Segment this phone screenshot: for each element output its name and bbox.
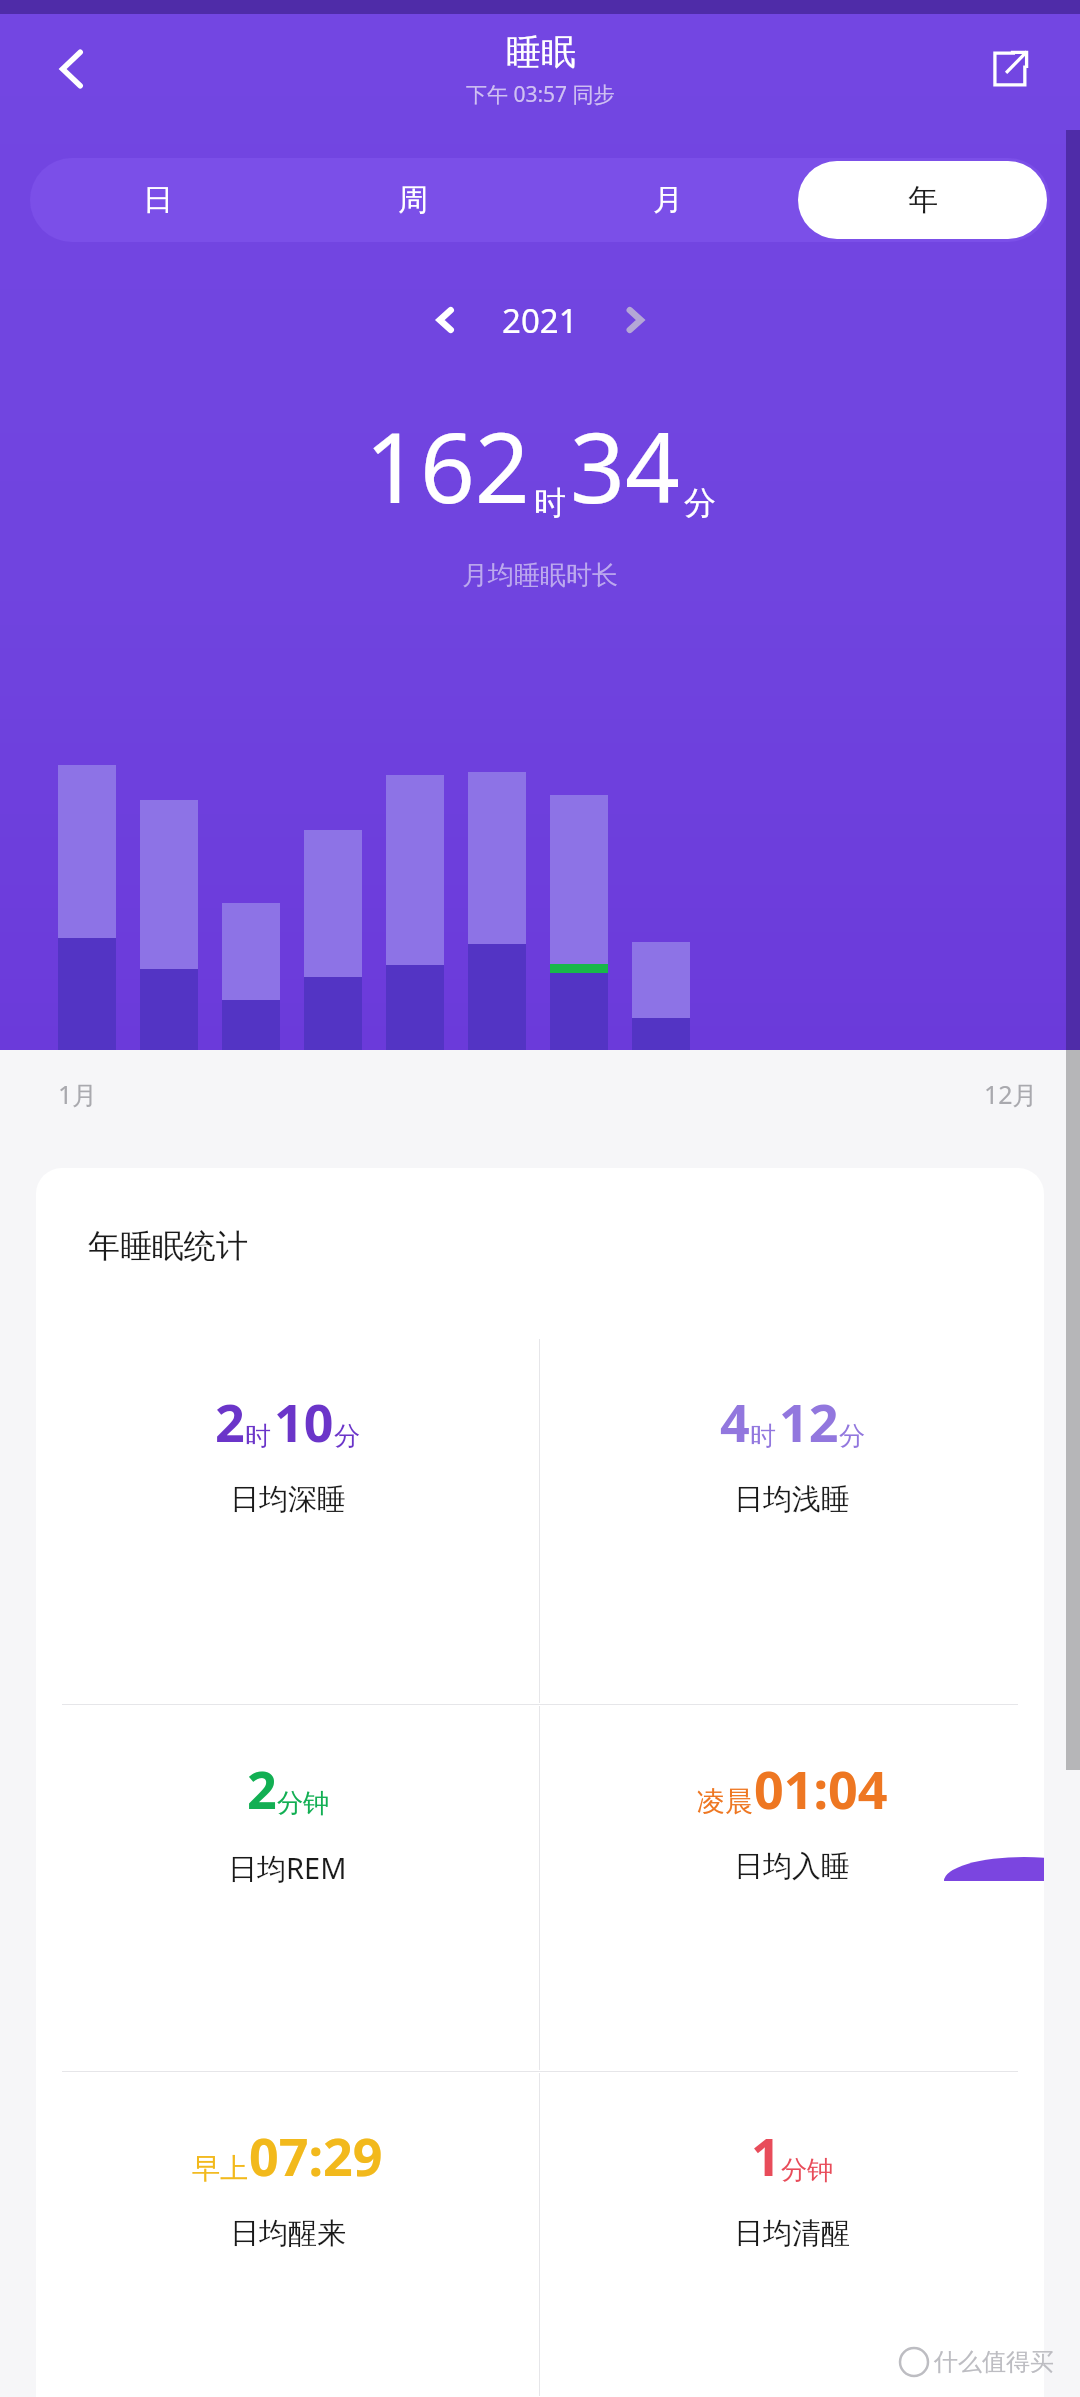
staticText: 4 <box>720 1386 750 1457</box>
staticText: 1月 <box>58 1077 98 1111</box>
staticText: 12月 <box>984 1077 1038 1111</box>
staticText: 162 <box>365 400 530 531</box>
staticText: 分 <box>334 1420 360 1453</box>
staticText: 日均醒来 <box>230 2215 346 2252</box>
button[interactable]: Back <box>30 26 116 112</box>
staticText: 年睡眠统计 <box>88 1226 248 1266</box>
staticText: 时 <box>245 1420 271 1453</box>
staticText: 34 <box>570 400 680 531</box>
staticText: 年 <box>908 181 938 219</box>
staticText: 月均睡眠时长 <box>0 559 1080 592</box>
staticText: 时 <box>750 1420 776 1453</box>
button[interactable]: 年 <box>798 161 1047 239</box>
staticText: 分 <box>684 483 716 523</box>
button[interactable]: Share <box>966 26 1052 112</box>
staticText: 睡眠 <box>506 30 576 74</box>
staticText: 10 <box>274 1386 334 1457</box>
staticText: 日均REM <box>228 1848 347 1888</box>
staticText: 日 <box>143 181 173 219</box>
staticText: 2 <box>215 1386 245 1457</box>
staticText: 周 <box>398 181 428 219</box>
staticText: 日均清醒 <box>734 2215 850 2252</box>
button[interactable]: 月 <box>543 161 792 239</box>
staticText: 07:29 <box>249 2120 383 2191</box>
staticText: 日均浅睡 <box>734 1481 850 1518</box>
staticText: 什么值得买 <box>934 2347 1054 2377</box>
staticText: 2021 <box>502 298 578 343</box>
staticText: 12 <box>779 1386 839 1457</box>
staticText: 分钟 <box>277 1787 329 1820</box>
staticText: 日均入睡 <box>734 1848 850 1885</box>
button[interactable]: 周 <box>288 161 537 239</box>
staticText: 01:04 <box>754 1753 888 1824</box>
staticText: 时 <box>534 483 566 523</box>
staticText: 下午 03:57 同步 <box>466 80 615 109</box>
button[interactable]: 日 <box>33 161 282 239</box>
staticText: 早上 <box>192 2151 248 2186</box>
staticText: 1 <box>751 2120 781 2191</box>
button[interactable]: Previous year <box>410 285 480 355</box>
staticText: 月 <box>653 181 683 219</box>
staticText: 凌晨 <box>697 1784 753 1819</box>
staticText: 2 <box>247 1753 277 1824</box>
staticText: 日均深睡 <box>230 1481 346 1518</box>
staticText: 分 <box>839 1420 865 1453</box>
staticText: 分钟 <box>781 2154 833 2187</box>
button[interactable]: Next year <box>600 285 670 355</box>
